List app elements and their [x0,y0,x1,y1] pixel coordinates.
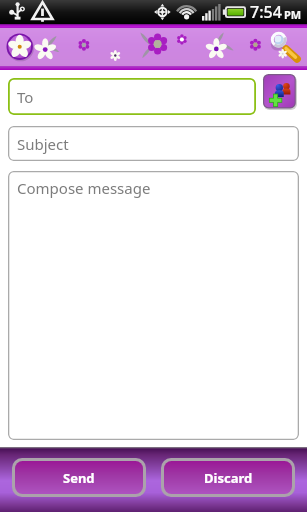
staticText: To [17,87,34,107]
button[interactable]: Discard [161,458,295,497]
staticText: Discard [204,469,253,487]
staticText: Subject [17,134,69,154]
button[interactable]: To [8,78,256,115]
staticText: Compose message [17,178,151,198]
staticText: 7:54 [250,1,282,23]
button[interactable]: Compose message [8,171,299,440]
staticText: PM [284,7,302,22]
button[interactable]: Subject [8,126,299,161]
button[interactable]: Pick contacts [263,74,297,110]
staticText: Send [63,469,95,487]
button[interactable]: Send [12,458,146,497]
